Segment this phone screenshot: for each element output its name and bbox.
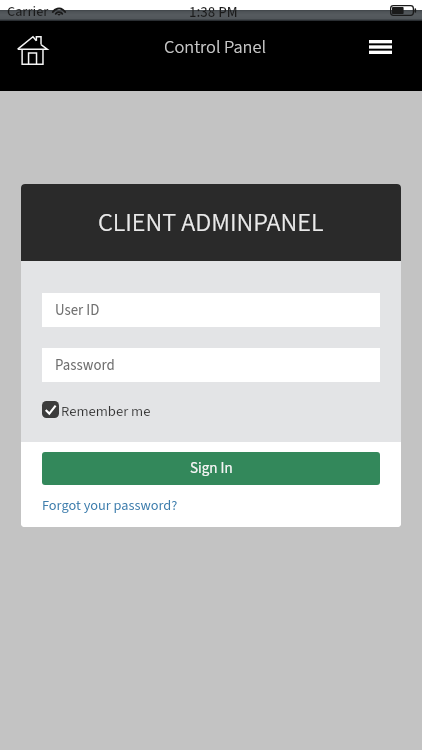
staticText: Carrier (7, 1, 49, 21)
button[interactable]: Sign In (42, 452, 380, 485)
button[interactable]: Remember me (42, 399, 151, 420)
staticText: CLIENT ADMINPANEL (98, 204, 324, 241)
staticText: Password (55, 355, 115, 376)
button[interactable]: Home (3, 21, 61, 79)
button[interactable]: Menu (353, 20, 407, 74)
staticText: Sign In (190, 458, 233, 479)
button[interactable]: Password (42, 348, 380, 382)
staticText: 1:38 PM (189, 2, 238, 23)
button[interactable]: Forgot your password? (42, 495, 178, 515)
button[interactable]: User ID (42, 293, 380, 327)
staticText: User ID (55, 300, 100, 321)
staticText: Control Panel (164, 34, 266, 60)
staticText: Remember me (61, 401, 151, 422)
